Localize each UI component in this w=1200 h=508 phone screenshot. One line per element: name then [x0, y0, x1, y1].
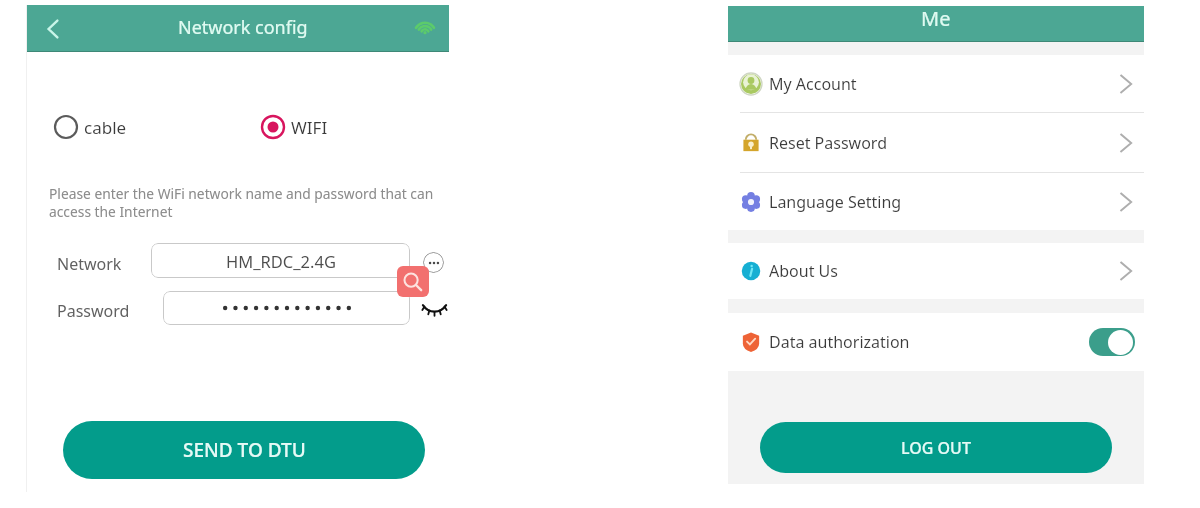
button[interactable]: More options: [423, 252, 444, 273]
button[interactable]: Data authorization toggle: [1089, 328, 1135, 356]
staticText: Network config: [178, 15, 308, 40]
button[interactable]: About Us: [728, 243, 1144, 299]
button[interactable]: Language Setting: [728, 173, 1144, 230]
button[interactable]: Back: [32, 8, 74, 50]
button[interactable]: HM_RDC_2.4G: [151, 243, 410, 278]
button[interactable]: [163, 291, 410, 325]
button[interactable]: WIFI: [260, 114, 328, 140]
staticText: LOG OUT: [901, 437, 971, 459]
staticText: cable: [84, 116, 127, 139]
staticText: Network: [57, 253, 122, 275]
staticText: Language Setting: [769, 191, 902, 213]
staticText: Password: [57, 300, 130, 322]
button[interactable]: Data authorization: [728, 313, 1144, 371]
staticText: Reset Password: [769, 132, 887, 154]
staticText: About Us: [769, 260, 838, 282]
staticText: Me: [921, 5, 951, 32]
button[interactable]: My Account: [728, 55, 1144, 112]
staticText: WIFI: [291, 116, 328, 139]
staticText: My Account: [769, 73, 857, 95]
staticText: SEND TO DTU: [183, 437, 306, 463]
button[interactable]: WiFi status: [412, 12, 438, 38]
staticText: Data authorization: [769, 331, 910, 353]
button[interactable]: Reset Password: [728, 113, 1144, 172]
button[interactable]: SEND TO DTU: [63, 421, 425, 479]
button[interactable]: cable: [53, 114, 127, 140]
button[interactable]: Search networks: [397, 266, 429, 297]
staticText: Please enter the WiFi network name and p…: [49, 184, 434, 221]
staticText: HM_RDC_2.4G: [226, 250, 336, 272]
button[interactable]: Show password: [419, 299, 449, 319]
button[interactable]: LOG OUT: [760, 422, 1112, 473]
